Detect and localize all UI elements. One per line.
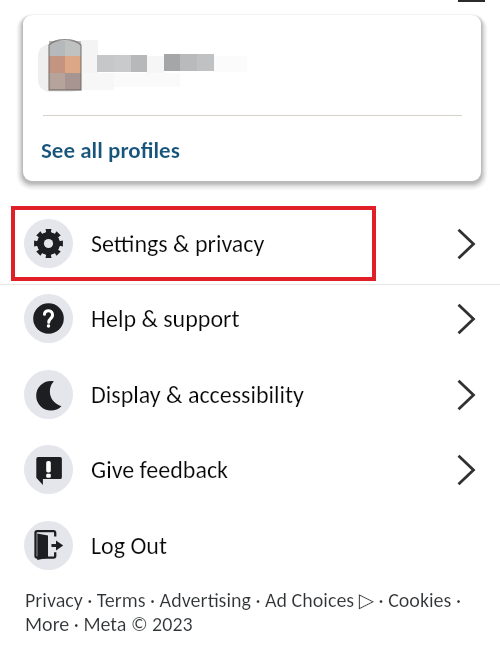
staticText: Help & support [91, 304, 240, 333]
other: Display and accessibility [449, 378, 483, 412]
button[interactable]: See all profiles [23, 122, 481, 178]
staticText: See all profiles [41, 136, 180, 164]
staticText: Display & accessibility [91, 380, 304, 409]
other: Give feedback [449, 453, 483, 487]
staticText: More · Meta © 2023 [25, 612, 193, 636]
staticText: Log Out [91, 531, 168, 560]
staticText: Settings & privacy [91, 229, 265, 258]
button[interactable]: Settings & privacy [0, 206, 500, 281]
other: Settings and privacy [449, 227, 483, 261]
other: Help and support [449, 302, 483, 336]
staticText: Privacy · Terms · Advertising · Ad Choic… [25, 588, 461, 612]
staticText: Give feedback [91, 455, 229, 484]
button[interactable]: Display & accessibility [0, 357, 500, 432]
button[interactable]: Help & support [0, 281, 500, 356]
button[interactable]: Give feedback [0, 432, 500, 507]
button[interactable]: Log Out [0, 508, 500, 583]
